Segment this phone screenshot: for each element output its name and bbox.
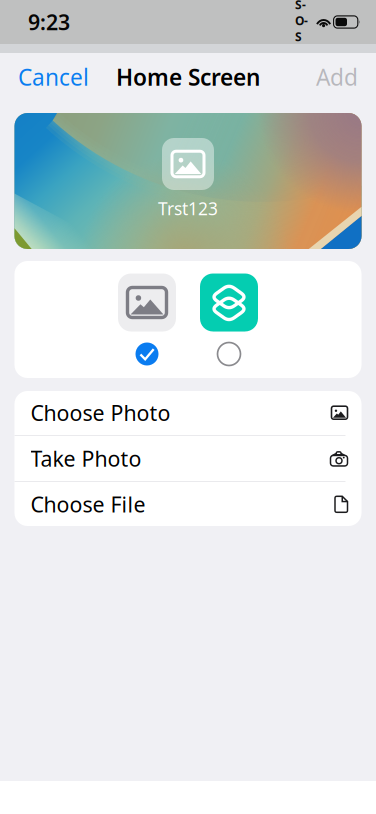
staticText: SOS	[295, 0, 308, 44]
staticText: Home Screen	[116, 62, 260, 92]
staticText: Take Photo	[30, 444, 141, 473]
staticText: 9:23	[28, 8, 70, 36]
button[interactable]: Cancel	[18, 54, 89, 100]
button[interactable]: Take Photo	[14, 436, 361, 481]
button[interactable]: Add	[316, 54, 358, 100]
staticText: Choose File	[30, 490, 145, 518]
staticText: Choose Photo	[30, 398, 170, 427]
button[interactable]: Use app icon	[200, 273, 258, 365]
button[interactable]: Choose Photo	[14, 390, 361, 435]
staticText: Add	[316, 62, 358, 92]
button[interactable]: Use photo icon	[118, 273, 176, 365]
staticText: Trst123	[158, 197, 218, 220]
staticText: Cancel	[18, 62, 89, 92]
button[interactable]: Choose File	[14, 482, 361, 527]
